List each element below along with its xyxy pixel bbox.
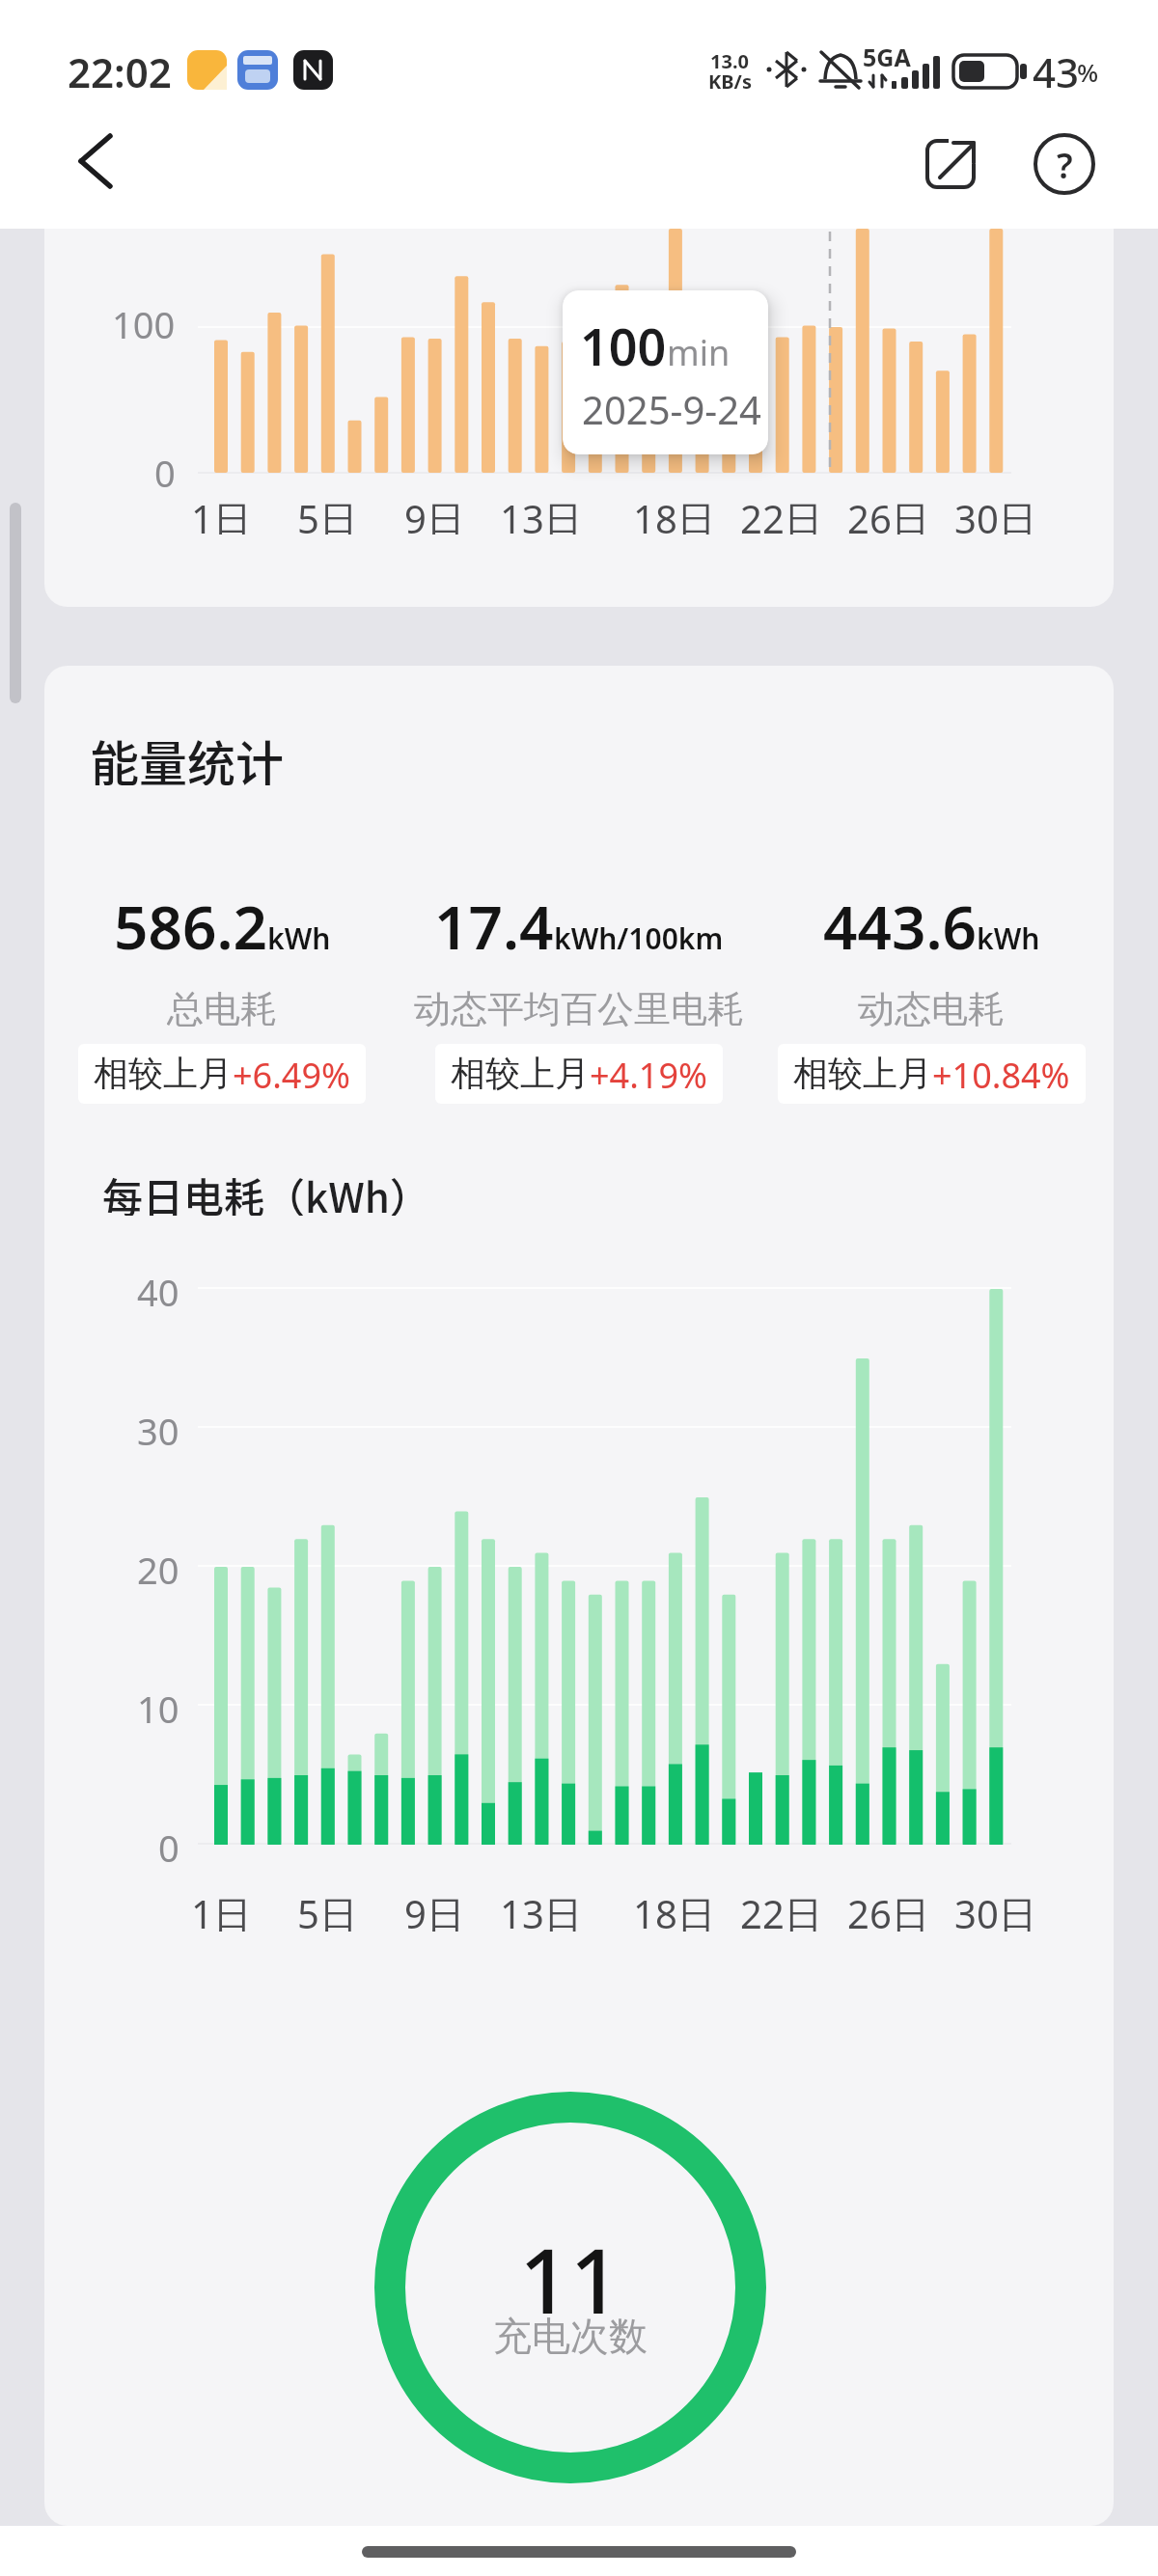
staticText: 100 bbox=[112, 299, 176, 342]
staticText: 动态电耗 bbox=[858, 986, 1005, 1028]
staticText: 10 bbox=[137, 1684, 179, 1726]
button[interactable] bbox=[917, 130, 984, 198]
staticText: 22日 bbox=[740, 492, 823, 534]
staticText: 充电次数 bbox=[493, 2312, 648, 2356]
staticText: 9日 bbox=[404, 1887, 465, 1932]
staticText: 586.2 bbox=[114, 886, 267, 957]
staticText: 22:02 bbox=[68, 44, 172, 93]
staticText: kWh/100km bbox=[554, 918, 724, 958]
staticText: 动态平均百公里电耗 bbox=[414, 986, 744, 1028]
staticText: 每日电耗（kWh） bbox=[102, 1165, 430, 1216]
staticText: 相较上月 bbox=[94, 1052, 233, 1095]
staticText: +6.49% bbox=[233, 1052, 350, 1096]
staticText: 总电耗 bbox=[167, 986, 277, 1028]
staticText: 5日 bbox=[297, 492, 358, 534]
staticText: 5日 bbox=[297, 1887, 358, 1932]
staticText: 0 bbox=[154, 448, 176, 490]
staticText: 18日 bbox=[633, 492, 716, 534]
staticText: 443.6 bbox=[823, 886, 977, 957]
staticText: kWh bbox=[267, 918, 331, 958]
staticText: 0 bbox=[158, 1822, 179, 1865]
staticText: min bbox=[667, 329, 731, 376]
button[interactable] bbox=[68, 125, 135, 199]
staticText: 13日 bbox=[500, 1887, 583, 1932]
staticText: kWh bbox=[977, 918, 1040, 958]
staticText: 1日 bbox=[191, 492, 252, 534]
staticText: 100 bbox=[580, 312, 667, 380]
staticText: 26日 bbox=[847, 1887, 930, 1932]
button[interactable] bbox=[1031, 130, 1098, 198]
staticText: 13日 bbox=[500, 492, 583, 534]
staticText: 30 bbox=[137, 1406, 179, 1448]
staticText: 43 bbox=[1033, 44, 1080, 93]
staticText: 2025-9-24 bbox=[582, 383, 761, 435]
staticText: 11 bbox=[519, 2219, 621, 2316]
staticText: KB/s bbox=[708, 69, 752, 90]
staticText: ? bbox=[1057, 142, 1073, 186]
staticText: 17.4 bbox=[434, 886, 554, 957]
staticText: 18日 bbox=[633, 1887, 716, 1932]
staticText: 相较上月 bbox=[451, 1052, 590, 1095]
staticText: 26日 bbox=[847, 492, 930, 534]
staticText: 30日 bbox=[954, 492, 1037, 534]
staticText: 能量统计 bbox=[91, 726, 284, 785]
staticText: 相较上月 bbox=[793, 1052, 932, 1095]
staticText: 9日 bbox=[404, 492, 465, 534]
staticText: +10.84% bbox=[932, 1052, 1070, 1096]
staticText: 30日 bbox=[954, 1887, 1037, 1932]
staticText: 22日 bbox=[740, 1887, 823, 1932]
staticText: % bbox=[1077, 55, 1099, 89]
staticText: 5GA bbox=[863, 41, 911, 69]
staticText: 13.0 bbox=[710, 48, 749, 69]
staticText: 20 bbox=[137, 1545, 179, 1587]
staticText: +4.19% bbox=[590, 1052, 707, 1096]
staticText: 1日 bbox=[191, 1887, 252, 1932]
staticText: 40 bbox=[137, 1267, 179, 1309]
